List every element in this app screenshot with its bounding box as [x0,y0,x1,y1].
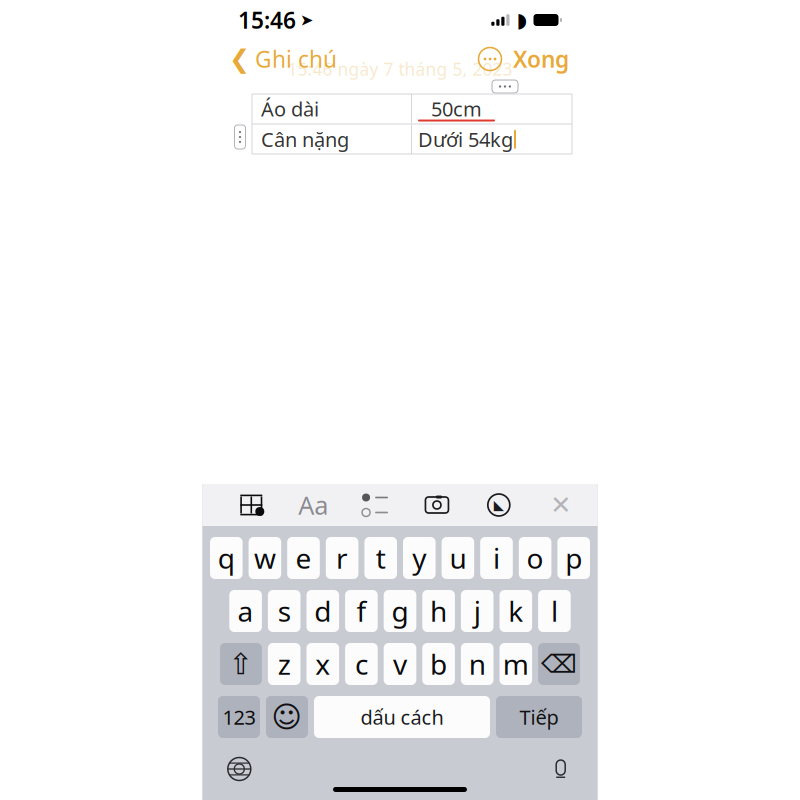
button[interactable]: Đổi bàn phím [224,754,254,784]
staticText: e [295,539,311,577]
button[interactable]: e [287,537,320,579]
button[interactable]: m [499,643,532,685]
staticText: h [430,592,447,630]
staticText: ◣ [494,497,504,512]
button[interactable]: t [364,537,397,579]
staticText: Cân nặng [261,126,349,153]
button[interactable]: Định dạng [296,488,330,522]
staticText: y [412,539,426,577]
staticText: o [527,539,544,577]
button[interactable]: Tiếp [496,696,582,738]
staticText: ◗ [516,9,527,31]
staticText: ➤ [300,11,313,29]
button[interactable]: ❮ [224,38,342,80]
button[interactable]: l [538,590,571,632]
button[interactable]: u [442,537,474,579]
button[interactable]: n [461,643,493,685]
button[interactable]: j [461,590,493,632]
staticText: b [430,645,447,683]
staticText: w [254,539,276,577]
staticText: i [493,539,500,577]
staticText: a [238,592,254,630]
staticText: s [278,592,291,630]
staticText: x [315,645,330,683]
button[interactable]: Camera [420,488,454,522]
staticText: 123 [222,704,255,730]
staticText: 50cm [431,95,482,122]
staticText: ✕ [550,491,571,519]
staticText: d [314,592,331,630]
button[interactable]: h [422,590,455,632]
staticText: r [336,539,348,577]
button[interactable]: Bảng [234,488,268,522]
button[interactable]: Thêm [474,43,506,75]
staticText: j [474,592,481,630]
staticText: ❮ [229,45,250,73]
button[interactable]: s [268,590,300,632]
staticText: Dưới 54kg [418,126,513,153]
button[interactable]: Di chuyển hàng [234,125,245,149]
button[interactable]: r [326,537,358,579]
staticText: v [393,645,407,683]
staticText: Tiếp [519,704,558,730]
button[interactable]: Emoji [266,696,308,738]
button[interactable]: k [499,590,532,632]
button[interactable]: a [229,590,262,632]
button[interactable]: x [306,643,339,685]
button[interactable]: z [268,643,300,685]
staticText: Xong [513,44,569,74]
staticText: ⇧ [228,647,253,681]
button[interactable]: o [519,537,551,579]
staticText: 15:46 ngày 7 tháng 5, 2023 [287,57,512,80]
button[interactable]: dấu cách [314,696,490,738]
button[interactable]: i [480,537,513,579]
staticText: g [391,592,408,630]
button[interactable]: v [384,643,416,685]
staticText: q [218,539,235,577]
button[interactable]: f [345,590,378,632]
staticText: f [356,592,366,630]
staticText: n [469,645,486,683]
staticText: ☺ [271,700,302,734]
staticText: p [565,539,582,577]
staticText: z [278,645,291,683]
staticText: dấu cách [360,704,443,730]
staticText: Ghi chú [255,44,337,74]
button[interactable]: d [306,590,339,632]
button[interactable]: Shift [220,643,262,685]
button[interactable]: c [345,643,378,685]
staticText: u [449,539,466,577]
staticText: m [503,645,529,683]
button[interactable]: b [422,643,455,685]
staticText: t [376,539,386,577]
staticText: Aa [298,488,328,522]
staticText: Áo dài [261,95,319,122]
button[interactable]: 123 [218,696,260,738]
staticText: k [508,592,523,630]
button[interactable]: Xoá [538,643,580,685]
button[interactable]: y [403,537,436,579]
staticText: ⌫ [541,650,577,678]
button[interactable]: Đọc chính tả [546,754,576,784]
button[interactable]: q [210,537,243,579]
button[interactable]: Đóng [544,488,578,522]
button[interactable]: p [557,537,590,579]
staticText: l [551,592,558,630]
button[interactable]: Xong [506,38,576,80]
staticText: c [355,645,368,683]
staticText: 15:46 [238,5,296,35]
button[interactable]: g [384,590,416,632]
button[interactable]: Đánh dấu [482,488,516,522]
button[interactable]: w [249,537,281,579]
button[interactable]: Danh sách kiểm tra [358,488,392,522]
